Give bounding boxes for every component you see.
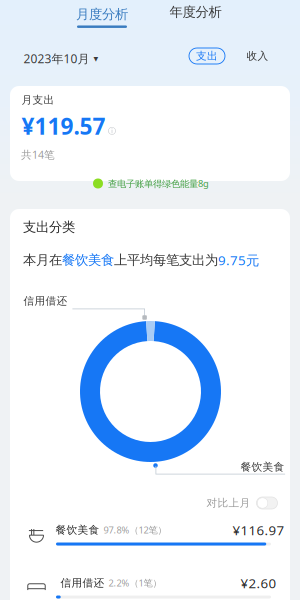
staticText: ▾ [93,53,98,64]
staticText: ⓘ [108,126,116,136]
staticText: 支出分类 [23,219,75,235]
staticText: 餐饮美食 [62,252,114,268]
staticText: 餐饮美食 [55,523,99,536]
button[interactable]: 餐饮美食 [0,0,300,600]
staticText: 2023年10月 [23,50,89,66]
staticText: 2.2%（1笔） [108,577,161,589]
staticText: ¥2.60 [240,574,276,592]
staticText: 年度分析 [169,4,221,20]
staticText: 本月在 [23,252,62,268]
staticText: 月度分析 [76,6,128,22]
staticText: 收入 [246,49,268,62]
staticText: 信用借还 [60,576,104,589]
staticText: 查电子账单得绿色能量8g [108,177,209,190]
button[interactable]: 2023年10月 [23,50,98,66]
button[interactable]: 年度分析 [169,4,221,20]
staticText: ¥116.97 [232,521,284,539]
button[interactable]: 支出 [189,48,225,64]
button[interactable]: 对比上月 [206,496,277,509]
staticText: 共14笔 [21,147,55,162]
staticText: ¥119.57 [21,111,105,141]
staticText: 9.75元 [218,251,259,269]
staticText: 上平均每笔支出为 [114,252,218,268]
button[interactable]: 查电子账单得绿色能量8g [93,177,209,190]
button[interactable]: 月度分析 [76,6,128,28]
staticText: 餐饮美食 [240,460,284,473]
staticText: 信用借还 [23,294,67,307]
staticText: 对比上月 [206,496,250,509]
button[interactable]: 信用借还 [0,0,300,600]
staticText: 支出 [196,49,218,62]
button[interactable]: 收入 [246,49,268,62]
staticText: 97.8%（12笔） [103,524,166,536]
staticText: 月支出 [21,93,54,106]
